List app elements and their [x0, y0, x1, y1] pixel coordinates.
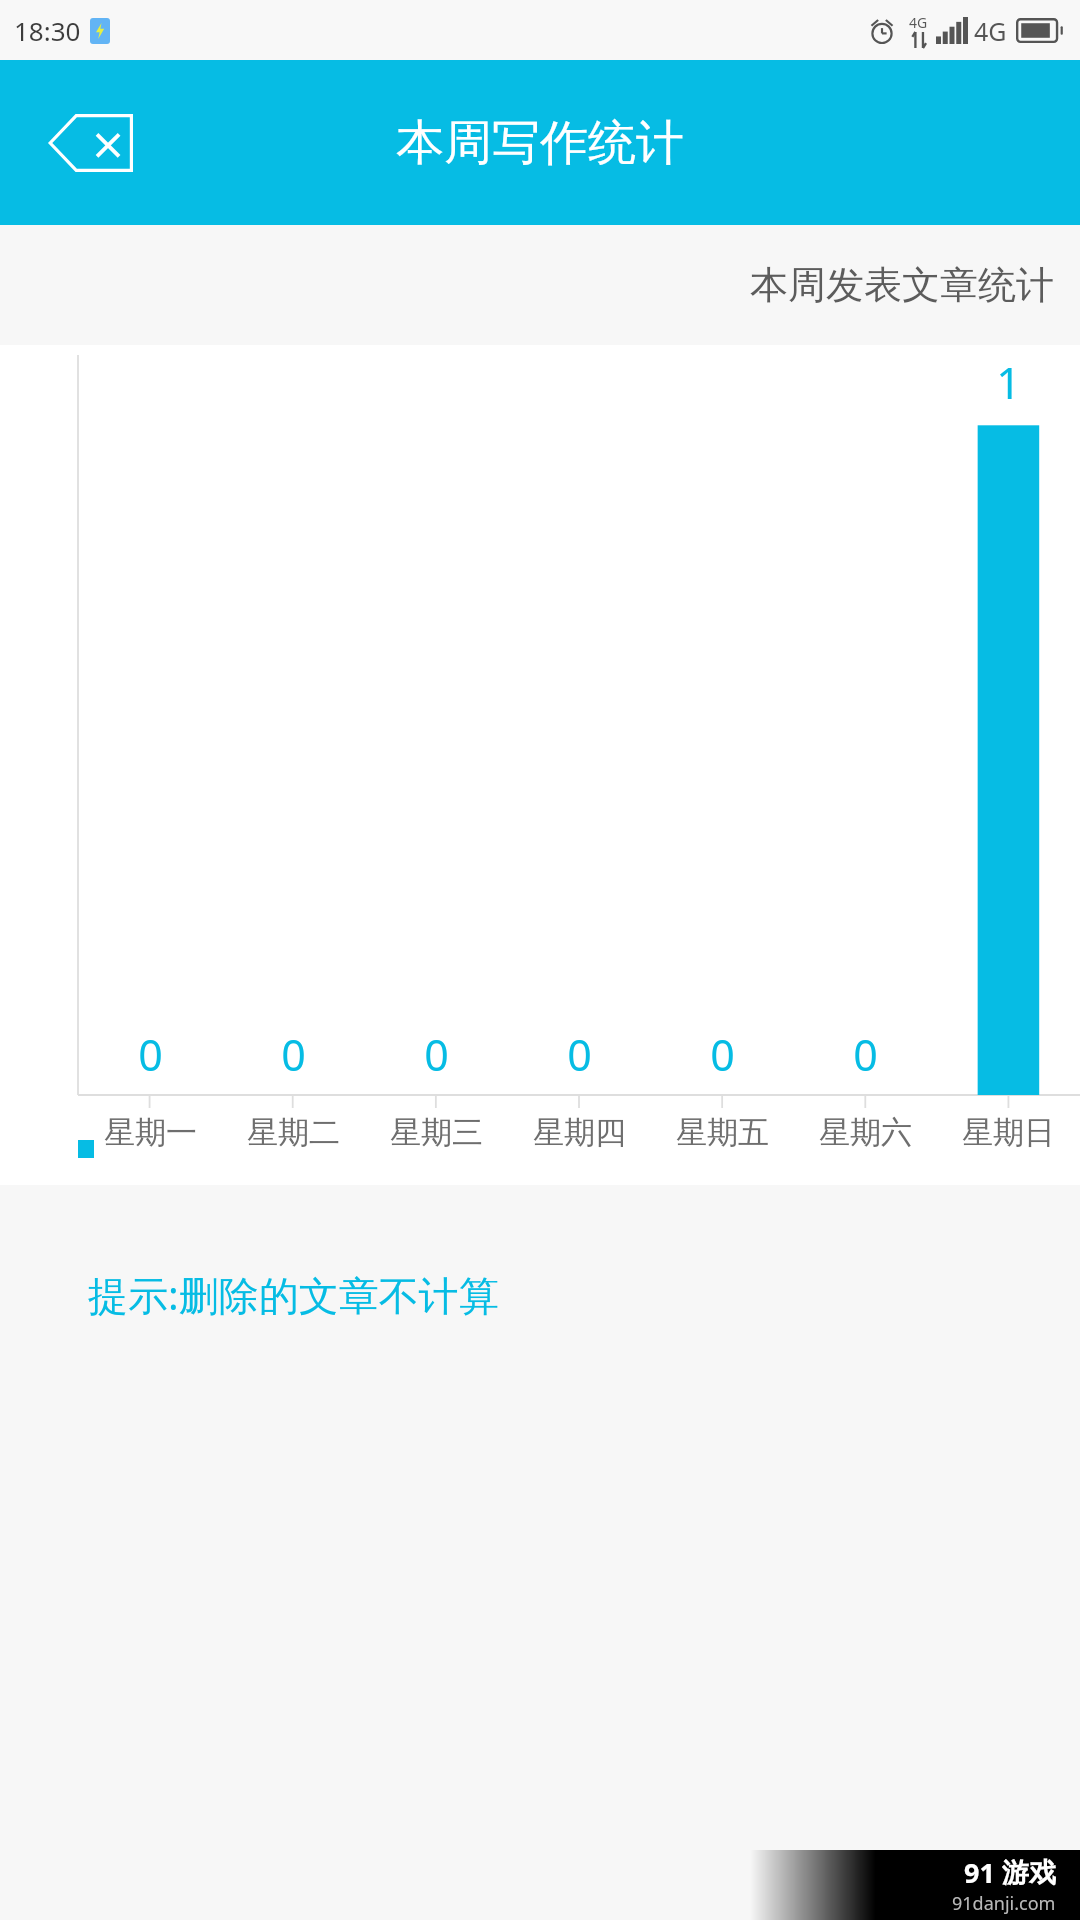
button[interactable]: Back — [40, 104, 140, 182]
staticText: 游戏 — [1002, 1856, 1056, 1890]
staticText: 0 — [710, 1025, 735, 1084]
staticText: 星期日 — [962, 1113, 1055, 1152]
staticText: 星期二 — [247, 1113, 340, 1152]
staticText: 4G — [909, 13, 928, 32]
staticText: 4G — [974, 14, 1007, 48]
staticText: 星期六 — [819, 1113, 912, 1152]
staticText: 星期一 — [104, 1113, 197, 1152]
staticText: 0 — [567, 1025, 592, 1084]
staticText: 0 — [138, 1025, 163, 1084]
staticText: 91 — [964, 1854, 995, 1891]
staticText: 星期三 — [390, 1113, 483, 1152]
staticText: 91danji.com — [952, 1891, 1056, 1916]
staticText: 0 — [853, 1025, 878, 1084]
staticText: 本周发表文章统计 — [750, 261, 1054, 309]
staticText: 本周写作统计 — [396, 113, 684, 173]
staticText: 1 — [996, 353, 1021, 412]
staticText: 0 — [281, 1025, 306, 1084]
staticText: 18:30 — [14, 13, 81, 48]
staticText: 提示:删除的文章不计算 — [88, 1267, 499, 1322]
staticText: 星期五 — [676, 1113, 769, 1152]
staticText: 星期四 — [533, 1113, 626, 1152]
staticText: 0 — [424, 1025, 449, 1084]
